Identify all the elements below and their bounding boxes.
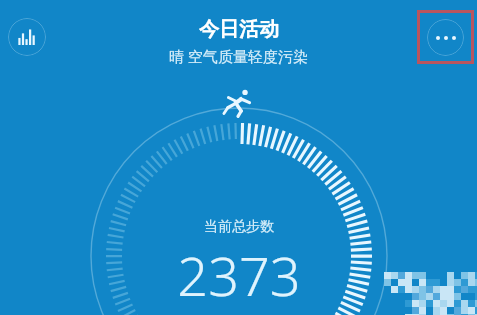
staticText: 2373 <box>177 238 301 312</box>
staticText: 晴 空气质量轻度污染 <box>169 46 308 66</box>
button[interactable]: More options <box>417 10 474 64</box>
staticText: 当前总步数 <box>204 218 274 236</box>
button[interactable]: Statistics <box>8 18 46 56</box>
staticText: 今日活动 <box>199 17 279 42</box>
